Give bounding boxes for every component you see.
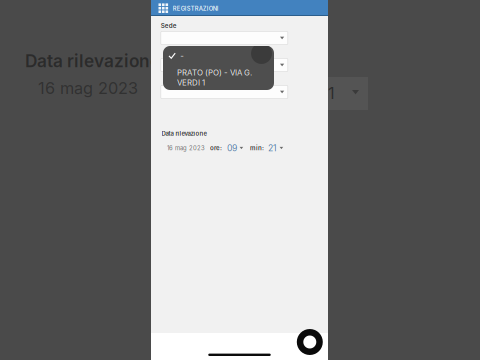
staticText: 21 [268,143,277,153]
staticText: ore: [210,144,222,152]
staticText: Data rilevazione [25,51,160,71]
staticText: REGISTRAZIONI [173,5,219,12]
button[interactable]: Sede [161,58,288,72]
button[interactable]: Sede [161,85,288,99]
button[interactable]: Change minutes [267,143,284,153]
staticText: Data rilevazione [162,130,208,137]
staticText: 09 [227,143,237,153]
button[interactable]: Stop screen recording [297,329,323,355]
staticText: 1 [328,83,335,103]
staticText: 16 mag 2023 [167,144,205,152]
staticText: VERDI 1 [177,78,205,87]
button[interactable]: PRATO (PO) - VIA G. VERDI 1 [163,46,274,90]
button[interactable]: Sede [161,31,288,45]
staticText: PRATO (PO) - VIA G. [177,68,252,77]
button[interactable]: Change hours [226,143,244,153]
staticText: Sede [161,22,177,30]
staticText: - [180,51,184,60]
staticText: min: [250,144,264,152]
staticText: 16 mag 2023 [38,78,138,98]
button[interactable]: Open menu [155,0,171,16]
